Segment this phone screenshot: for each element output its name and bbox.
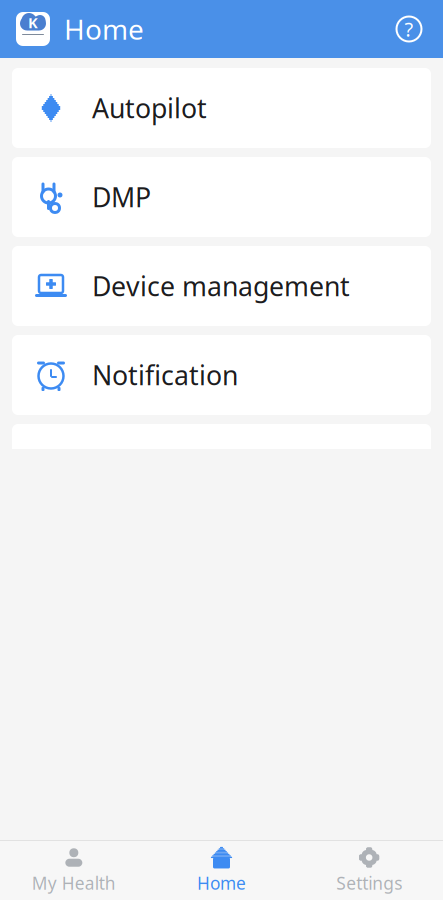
staticText: Notification <box>92 357 238 393</box>
staticText: Home <box>197 871 246 894</box>
button[interactable]: Settings <box>295 841 443 899</box>
staticText: Settings <box>336 871 402 894</box>
button[interactable]: My Health <box>0 841 148 899</box>
staticText: ? <box>404 16 413 42</box>
staticText: K <box>28 13 38 32</box>
button[interactable]: Autopilot <box>12 68 431 148</box>
button[interactable]: Device management <box>12 246 431 326</box>
button[interactable]: Notification <box>12 335 431 415</box>
staticText: Home <box>64 10 144 48</box>
staticText: Autopilot <box>92 90 207 126</box>
button[interactable]: DMP <box>12 157 431 237</box>
staticText: DMP <box>92 179 151 215</box>
staticText: My Health <box>32 871 116 894</box>
button[interactable]: Shortcuts <box>12 424 431 504</box>
button[interactable]: Home <box>148 841 295 899</box>
staticText: Device management <box>92 268 350 304</box>
button[interactable]: Help <box>387 7 431 51</box>
